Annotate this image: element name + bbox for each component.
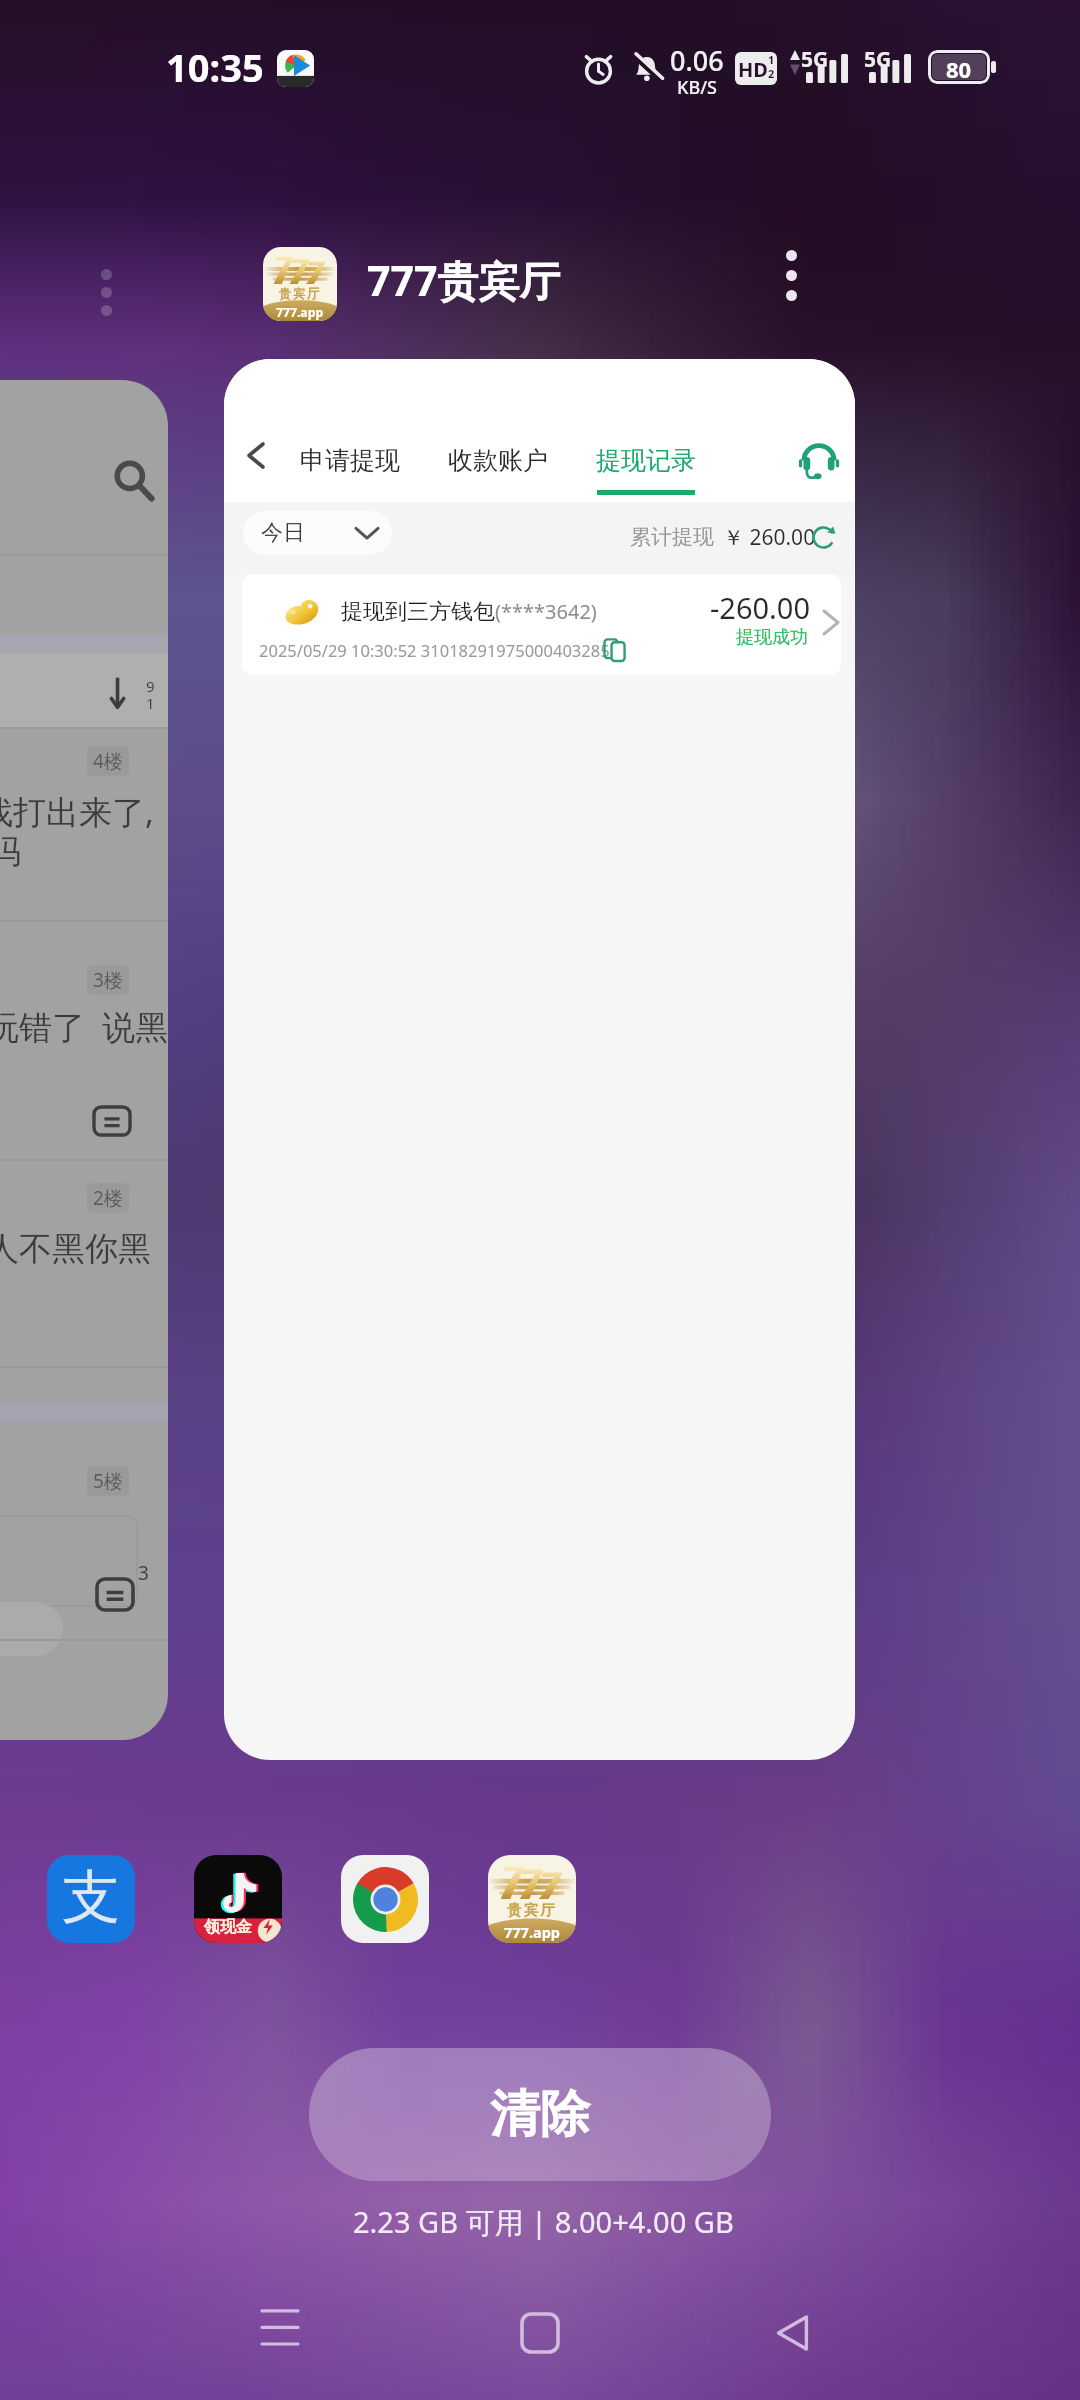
staticText: 收款账户 (448, 445, 548, 476)
button[interactable]: 主页 (504, 2297, 576, 2369)
staticText: 吗 (0, 831, 21, 873)
staticText: -260.00 (710, 588, 811, 627)
staticText: 提现到三方钱包 (341, 598, 495, 626)
staticText: ￥ 260.00 (723, 523, 816, 552)
button[interactable]: 返回 (224, 423, 288, 487)
staticText: 找打出来了, (0, 789, 154, 834)
staticText: 5G (864, 45, 892, 74)
staticText: 5楼 (93, 1468, 123, 1494)
staticText: 3 (138, 1560, 149, 1586)
staticText: 9 (146, 676, 155, 696)
staticText: 人不黑你黑 (0, 1228, 151, 1270)
button[interactable]: 申请提现 (294, 439, 406, 482)
staticText: 3楼 (93, 967, 123, 993)
staticText: 1 (768, 52, 775, 67)
staticText: 80 (946, 54, 972, 80)
button[interactable]: 777贵宾厅 (488, 1855, 576, 1943)
button[interactable]: 提现到三方钱包 (242, 574, 841, 675)
staticText: 1 (146, 693, 155, 713)
button[interactable]: 支付宝 (47, 1855, 135, 1943)
staticText: 4楼 (93, 748, 123, 774)
staticText: 2楼 (93, 1185, 123, 1211)
staticText: 申请提现 (300, 445, 400, 476)
staticText: 提现记录 (596, 445, 696, 476)
button[interactable]: 清除 (309, 2048, 771, 2181)
staticText: 2 (768, 66, 775, 81)
staticText: HD (738, 56, 768, 83)
staticText: 累计提现 (630, 524, 714, 550)
staticText: 提现成功 (736, 626, 808, 649)
staticText: 10:35 (166, 41, 264, 93)
staticText: 0.06 (670, 42, 724, 79)
button[interactable]: 今日 (243, 511, 392, 555)
button[interactable]: 收款账户 (442, 439, 554, 482)
staticText: 玩错了 说黑 (0, 1004, 168, 1049)
staticText: 5G (801, 45, 829, 74)
button[interactable]: 提现记录 (590, 439, 702, 495)
button[interactable]: 返回 (756, 2297, 828, 2369)
button[interactable]: 客服 (789, 431, 849, 491)
button[interactable]: 更多选项 (761, 245, 821, 305)
staticText: 今日 (261, 519, 305, 547)
staticText: 2.23 GB 可用 | 8.00+4.00 GB (353, 2202, 734, 2242)
staticText: 贵宾厅 (507, 1901, 558, 1919)
staticText: 支 (62, 1861, 120, 1934)
staticText: 2025/05/29 10:30:52 31018291975000403285… (259, 639, 620, 661)
staticText: 领现金 (204, 1917, 252, 1937)
button[interactable]: 更多选项 (76, 262, 136, 322)
button[interactable]: Chrome (341, 1855, 429, 1943)
staticText: 777.app (276, 304, 324, 321)
staticText: 777.app (504, 1922, 561, 1942)
staticText: (****3642) (495, 598, 597, 625)
button[interactable]: 最近任务 (244, 2290, 316, 2362)
button[interactable]: 抖音 (194, 1855, 282, 1943)
staticText: 贵宾厅 (279, 286, 322, 301)
staticText: KB/S (677, 75, 717, 100)
staticText: 777贵宾厅 (367, 252, 561, 308)
staticText: 清除 (490, 2083, 590, 2146)
